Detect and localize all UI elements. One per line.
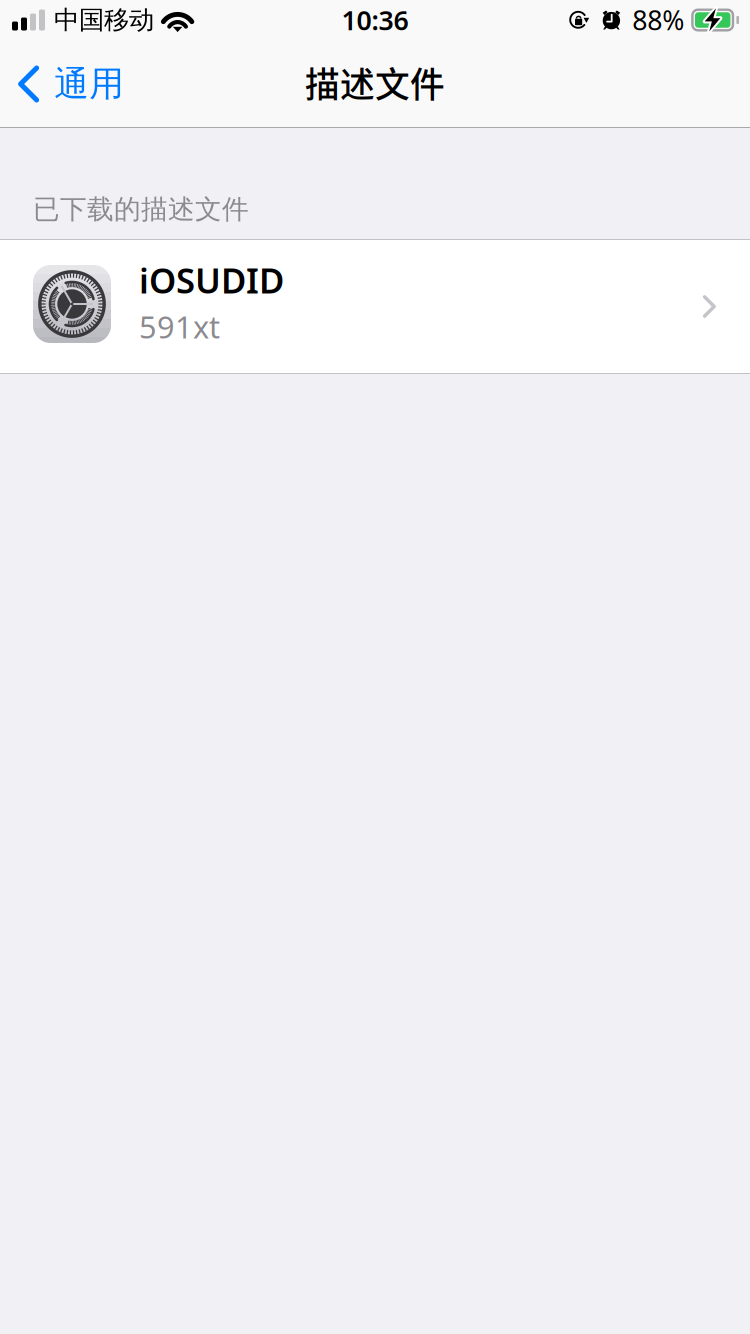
staticText: 已下载的描述文件 [33,193,249,226]
staticText: 88% [632,2,684,38]
staticText: 10:36 [341,2,408,38]
button[interactable]: iOSUDID [0,240,750,373]
staticText: 通用 [54,63,124,105]
staticText: iOSUDID [139,257,284,303]
staticText: 描述文件 [305,57,445,108]
button[interactable]: 通用 [0,40,142,128]
staticText: 中国移动 [54,4,154,35]
staticText: 591xt [139,306,220,347]
